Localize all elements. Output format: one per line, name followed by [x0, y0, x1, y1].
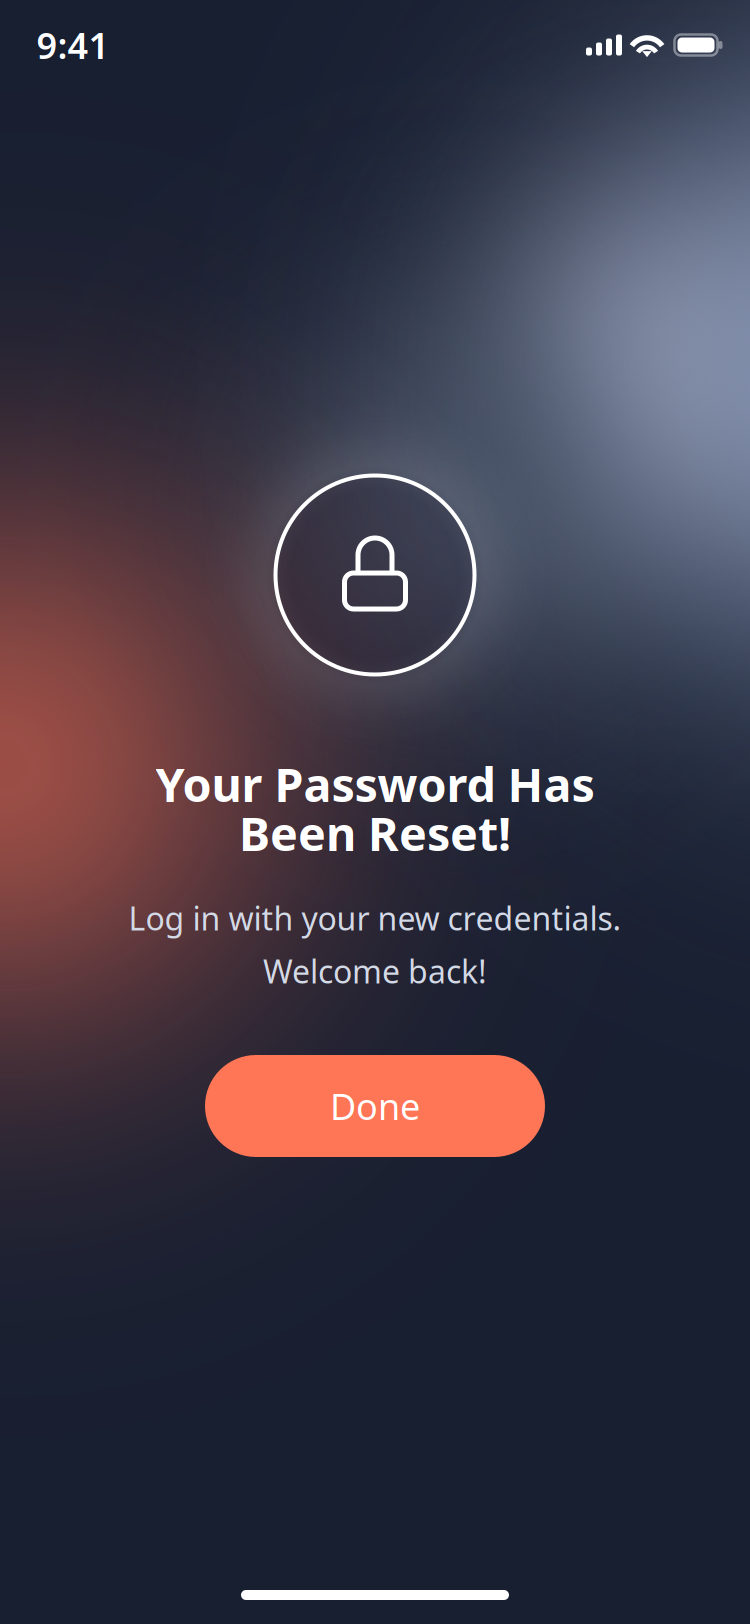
staticText: Welcome back! — [263, 950, 487, 992]
staticText: Been Reset! — [239, 802, 511, 864]
staticText: 9:41 — [36, 21, 109, 69]
staticText: Your Password Has — [155, 753, 594, 815]
button[interactable]: Done — [205, 1055, 545, 1157]
staticText: Done — [330, 1082, 420, 1130]
staticText: Log in with your new credentials. — [128, 897, 621, 939]
